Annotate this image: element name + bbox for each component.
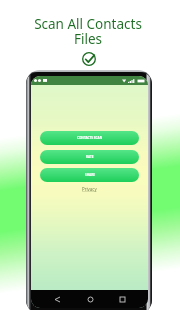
- button[interactable]: Home: [83, 292, 97, 306]
- button[interactable]: CONTACTS SCAN: [40, 131, 139, 145]
- button[interactable]: Back: [50, 292, 64, 306]
- button[interactable]: Privacy: [82, 186, 97, 192]
- button[interactable]: RATE: [40, 150, 139, 164]
- staticText: RATE: [86, 155, 94, 159]
- staticText: CONTACTS SCAN: [77, 136, 103, 140]
- button[interactable]: SHARE: [40, 168, 139, 182]
- staticText: Scan All Contacts Files: [34, 15, 142, 48]
- staticText: SHARE: [85, 173, 95, 177]
- button[interactable]: Recent apps: [115, 292, 129, 306]
